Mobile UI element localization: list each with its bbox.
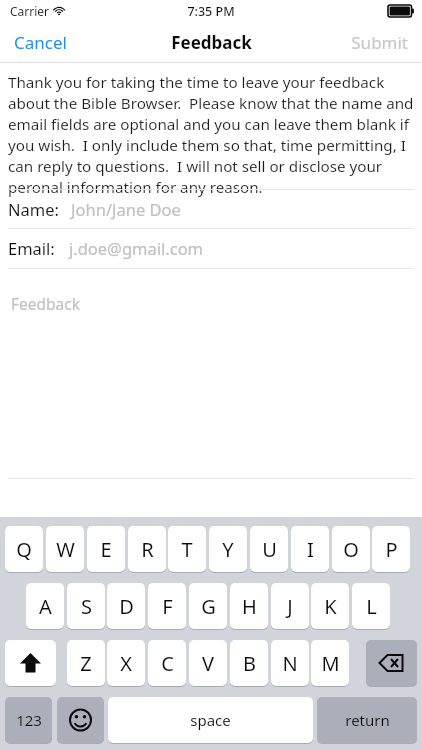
staticText: Submit bbox=[351, 31, 408, 54]
staticText: G bbox=[201, 593, 216, 620]
staticText: K bbox=[324, 593, 337, 620]
button[interactable]: Emoji bbox=[57, 697, 104, 743]
staticText: M bbox=[321, 650, 340, 677]
staticText: J bbox=[287, 593, 293, 620]
staticText: Y bbox=[222, 536, 234, 563]
staticText: Q bbox=[16, 536, 32, 563]
button[interactable]: T bbox=[168, 526, 206, 572]
button[interactable]: V bbox=[189, 640, 227, 686]
button[interactable]: X bbox=[107, 640, 145, 686]
button[interactable]: U bbox=[250, 526, 288, 572]
button[interactable]: L bbox=[352, 583, 390, 629]
staticText: T bbox=[181, 536, 193, 563]
staticText: P bbox=[385, 536, 398, 563]
staticText: return bbox=[345, 710, 390, 730]
button[interactable]: N bbox=[271, 640, 309, 686]
button[interactable]: space bbox=[108, 697, 313, 743]
staticText: F bbox=[162, 593, 173, 620]
button[interactable]: Shift bbox=[5, 640, 56, 686]
staticText: j.doe@gmail.com bbox=[69, 237, 204, 259]
button[interactable]: M bbox=[311, 640, 349, 686]
button[interactable]: Cancel bbox=[0, 25, 81, 60]
button[interactable]: W bbox=[46, 526, 84, 572]
button[interactable]: return bbox=[317, 697, 417, 743]
staticText: W bbox=[56, 536, 75, 563]
staticText: X bbox=[120, 650, 132, 677]
button[interactable]: B bbox=[230, 640, 268, 686]
staticText: Thank you for taking the time to leave y… bbox=[8, 72, 414, 198]
staticText: C bbox=[161, 650, 174, 677]
button[interactable]: E bbox=[87, 526, 125, 572]
button[interactable]: 123 bbox=[5, 697, 52, 743]
staticText: E bbox=[100, 536, 112, 563]
staticText: L bbox=[366, 593, 377, 620]
button[interactable]: D bbox=[107, 583, 145, 629]
staticText: R bbox=[141, 536, 154, 563]
staticText: A bbox=[39, 593, 52, 620]
staticText: O bbox=[343, 536, 359, 563]
button[interactable]: K bbox=[311, 583, 349, 629]
button[interactable]: Name: bbox=[0, 190, 422, 228]
staticText: 7:35 PM bbox=[187, 3, 235, 20]
button[interactable]: P bbox=[372, 526, 410, 572]
staticText: space bbox=[190, 710, 231, 730]
button[interactable]: Email: bbox=[0, 229, 422, 267]
button[interactable]: Feedback bbox=[0, 272, 422, 478]
staticText: U bbox=[262, 536, 277, 563]
staticText: V bbox=[202, 650, 214, 677]
button[interactable]: Z bbox=[67, 640, 105, 686]
staticText: Feedback bbox=[11, 293, 81, 314]
button[interactable]: A bbox=[26, 583, 64, 629]
button[interactable]: R bbox=[128, 526, 166, 572]
staticText: Carrier bbox=[10, 3, 50, 19]
button[interactable]: O bbox=[332, 526, 370, 572]
staticText: S bbox=[81, 593, 92, 620]
button[interactable]: Y bbox=[209, 526, 247, 572]
button[interactable]: Q bbox=[5, 526, 43, 572]
staticText: I bbox=[307, 536, 314, 563]
staticText: H bbox=[242, 593, 257, 620]
button[interactable]: J bbox=[271, 583, 309, 629]
staticText: D bbox=[119, 593, 134, 620]
button[interactable]: H bbox=[230, 583, 268, 629]
staticText: Email: bbox=[8, 237, 55, 259]
staticText: 123 bbox=[16, 710, 42, 730]
button[interactable]: C bbox=[148, 640, 186, 686]
button[interactable]: Submit bbox=[337, 25, 422, 60]
staticText: Cancel bbox=[14, 31, 67, 54]
staticText: Feedback bbox=[171, 31, 252, 54]
button[interactable]: F bbox=[148, 583, 186, 629]
staticText: John/Jane Doe bbox=[71, 198, 181, 220]
staticText: Name: bbox=[8, 198, 59, 220]
button[interactable]: G bbox=[189, 583, 227, 629]
staticText: N bbox=[282, 650, 298, 677]
staticText: B bbox=[243, 650, 256, 677]
button[interactable]: Backspace bbox=[366, 640, 417, 686]
staticText: Z bbox=[80, 650, 92, 677]
button[interactable]: S bbox=[67, 583, 105, 629]
button[interactable]: I bbox=[291, 526, 329, 572]
